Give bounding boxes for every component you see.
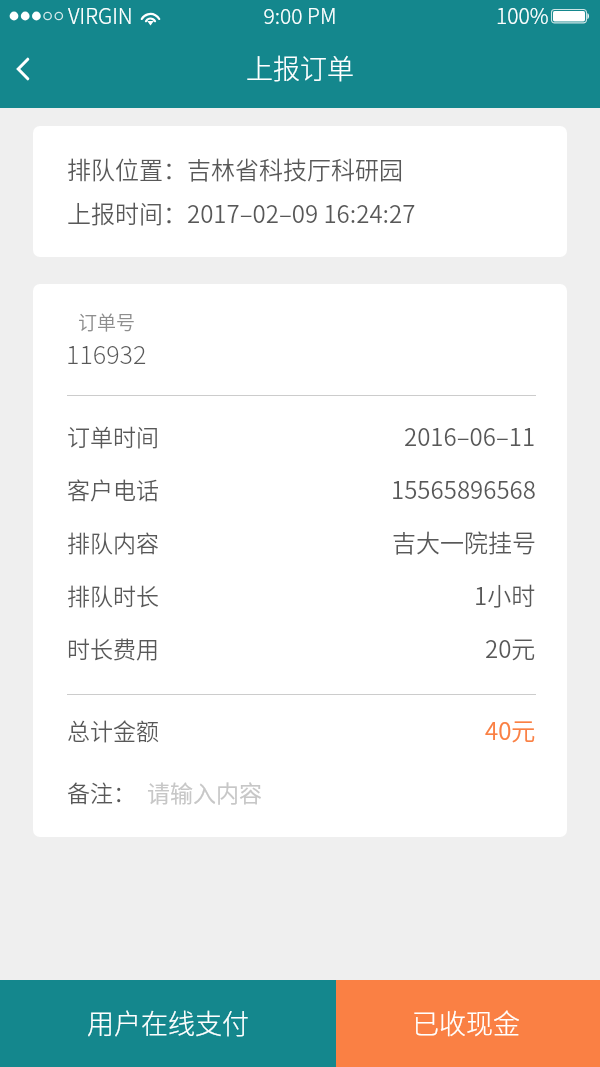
staticText: 客户电话 [67, 472, 159, 505]
staticText: 1小时 [474, 577, 536, 612]
button[interactable]: 订单时间 [67, 413, 536, 466]
staticText: 20元 [485, 630, 536, 665]
button[interactable]: 排队内容 [67, 519, 536, 572]
staticText: 时长费用 [67, 631, 159, 664]
staticText: 116932 [66, 335, 147, 371]
staticText: 排队内容 [67, 525, 159, 558]
button[interactable]: 客户电话 [67, 466, 536, 519]
staticText: 40元 [485, 712, 536, 747]
staticText: 9:00 PM [0, 0, 600, 30]
button[interactable]: 排队时长 [67, 572, 536, 625]
staticText: 上报订单 [0, 48, 600, 87]
staticText: 吉大一院挂号 [392, 524, 536, 559]
staticText: 订单号 [78, 308, 136, 336]
button[interactable]: 备注： [67, 769, 536, 822]
button[interactable]: 用户在线支付 [0, 980, 336, 1067]
button[interactable]: 时长费用 [67, 625, 536, 678]
staticText: 总计金额 [67, 713, 159, 746]
staticText: 排队时长 [67, 578, 159, 611]
staticText: 备注： [67, 775, 136, 808]
staticText: 订单时间 [67, 419, 159, 452]
button[interactable]: 已收现金 [336, 980, 600, 1067]
staticText: 排队位置：吉林省科技厅科研园 [67, 151, 403, 186]
staticText: 已收现金 [412, 1003, 520, 1042]
button[interactable]: 总计金额 [67, 707, 536, 760]
staticText: 用户在线支付 [87, 1003, 249, 1042]
staticText: 2016–06–11 [404, 418, 536, 453]
staticText: 请输入内容 [147, 775, 262, 808]
staticText: VIRGIN [68, 0, 133, 30]
staticText: 100% [496, 0, 549, 30]
button[interactable]: Back [0, 36, 60, 108]
staticText: 上报时间：2017–02–09 16:24:27 [67, 195, 416, 230]
staticText: 15565896568 [391, 471, 536, 506]
